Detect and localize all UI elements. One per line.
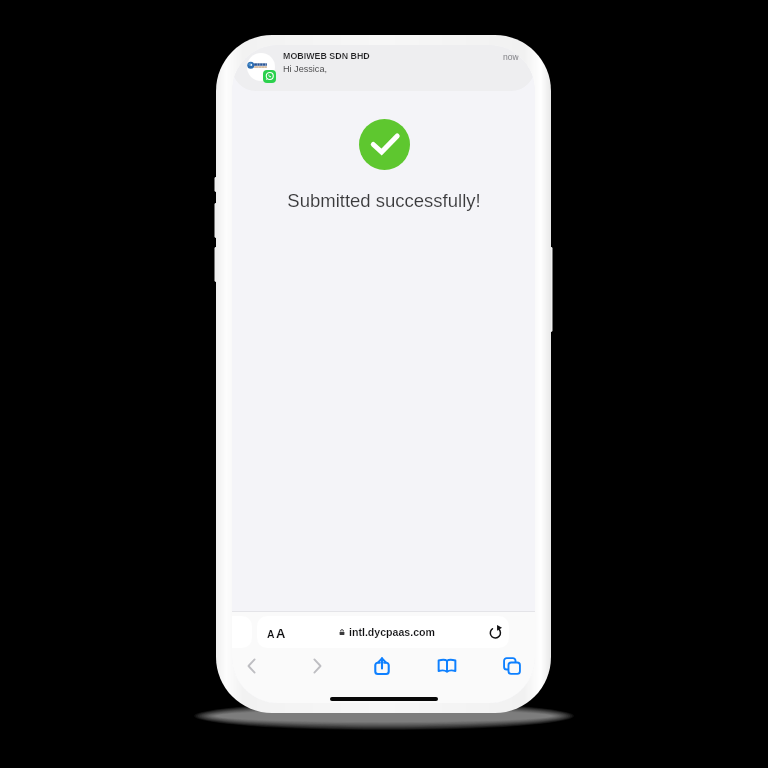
button[interactable]: MOBIWEB SDN BHD xyxy=(232,45,535,91)
staticText: intl.dycpaas.com xyxy=(349,626,435,638)
button[interactable]: Tabs xyxy=(495,652,528,680)
button[interactable]: Forward xyxy=(300,652,333,680)
staticText: Hi Jessica, xyxy=(283,64,327,74)
button[interactable]: Page settings xyxy=(257,616,509,648)
staticText: now xyxy=(503,52,519,62)
staticText: Submitted successfully! xyxy=(287,190,481,211)
staticText: A xyxy=(276,626,286,641)
staticText: MOBIWEB SDN BHD xyxy=(283,51,370,61)
staticText: A xyxy=(267,629,275,641)
button[interactable]: Reload xyxy=(484,620,506,642)
button[interactable]: Back xyxy=(235,652,268,680)
button[interactable]: Share xyxy=(365,652,398,680)
button[interactable]: Bookmarks xyxy=(430,652,463,680)
button[interactable]: Page settings xyxy=(259,616,293,648)
